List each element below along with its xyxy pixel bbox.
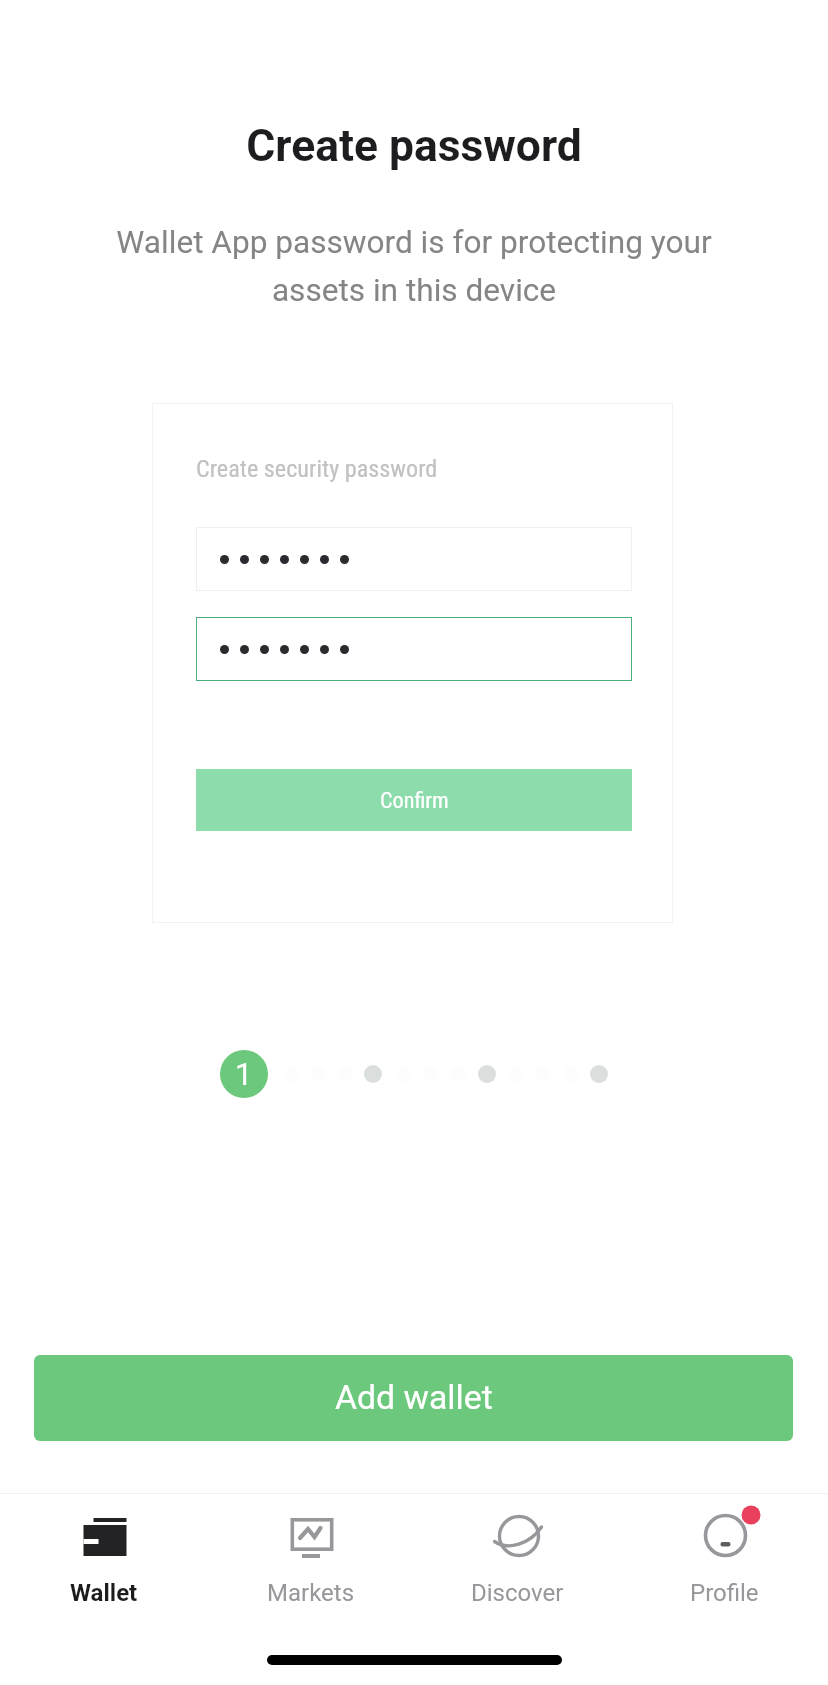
button[interactable]: Add wallet [34,1355,793,1441]
staticText: Profile [690,1579,759,1607]
button[interactable]: Wallet [0,1493,207,1633]
button[interactable]: Create security password [152,403,673,923]
button[interactable]: 1 [220,1050,268,1098]
staticText: Discover [471,1579,564,1607]
staticText: 1 [235,1056,253,1092]
staticText: Markets [267,1579,355,1607]
button[interactable]: Step [590,1065,608,1083]
staticText: Create password [0,120,828,172]
other: Markets [283,1512,339,1568]
staticText: Wallet App password is for protecting yo… [104,224,724,309]
button[interactable]: Profile [621,1493,828,1633]
button[interactable]: Markets [207,1493,414,1633]
button[interactable]: Step [364,1065,382,1083]
staticText: Create security password [196,455,438,483]
staticText: Add wallet [335,1378,493,1418]
staticText: Confirm [380,787,449,813]
other: Profile [697,1512,753,1568]
other: Wallet [76,1512,132,1568]
other: Discover [490,1512,546,1568]
staticText: Wallet [70,1579,138,1607]
button[interactable]: Step [478,1065,496,1083]
button[interactable]: Confirm [196,769,632,831]
button[interactable]: Discover [414,1493,621,1633]
